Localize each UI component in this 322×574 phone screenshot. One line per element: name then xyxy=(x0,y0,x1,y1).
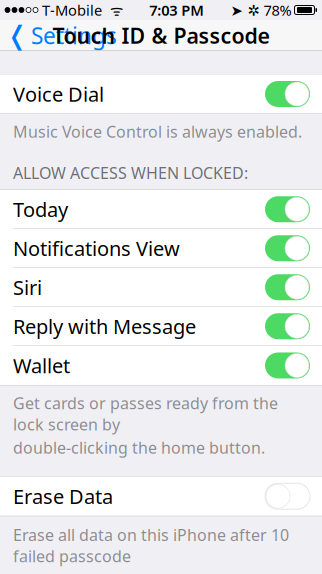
staticText: T-Mobile xyxy=(38,0,102,20)
staticText: ❬ xyxy=(6,20,28,51)
button[interactable]: Voice Dial xyxy=(0,74,322,113)
staticText: Erase Data xyxy=(13,483,113,510)
button[interactable]: Erase Data xyxy=(0,477,322,516)
staticText: Voice Dial xyxy=(13,81,104,107)
staticText: Notifications View xyxy=(13,235,180,262)
staticText: Settings xyxy=(31,20,117,50)
button[interactable]: Notifications View xyxy=(0,229,322,268)
staticText: Touch ID & Passcode xyxy=(52,21,269,50)
button[interactable]: Siri xyxy=(0,268,322,307)
staticText: ᯤ xyxy=(102,0,123,20)
staticText: Get cards or passes ready from the lock … xyxy=(13,392,278,435)
staticText: Reply with Message xyxy=(13,313,196,340)
staticText: 7:03 PM xyxy=(149,0,204,20)
staticText: double-clicking the home button. xyxy=(13,437,265,458)
button[interactable]: Reply with Message xyxy=(0,307,322,346)
button[interactable]: Wallet xyxy=(0,346,322,385)
staticText: Music Voice Control is always enabled. xyxy=(13,121,302,142)
staticText: Wallet xyxy=(13,352,70,379)
staticText: ➤ ✲ 78% xyxy=(230,0,291,20)
staticText: Today xyxy=(13,196,68,223)
staticText: Erase all data on this iPhone after 10 f… xyxy=(13,524,289,567)
button[interactable]: Today xyxy=(0,190,322,229)
button[interactable]: ❬ xyxy=(0,14,117,57)
staticText: Siri xyxy=(13,274,42,301)
staticText: ALLOW ACCESS WHEN LOCKED: xyxy=(13,162,248,183)
